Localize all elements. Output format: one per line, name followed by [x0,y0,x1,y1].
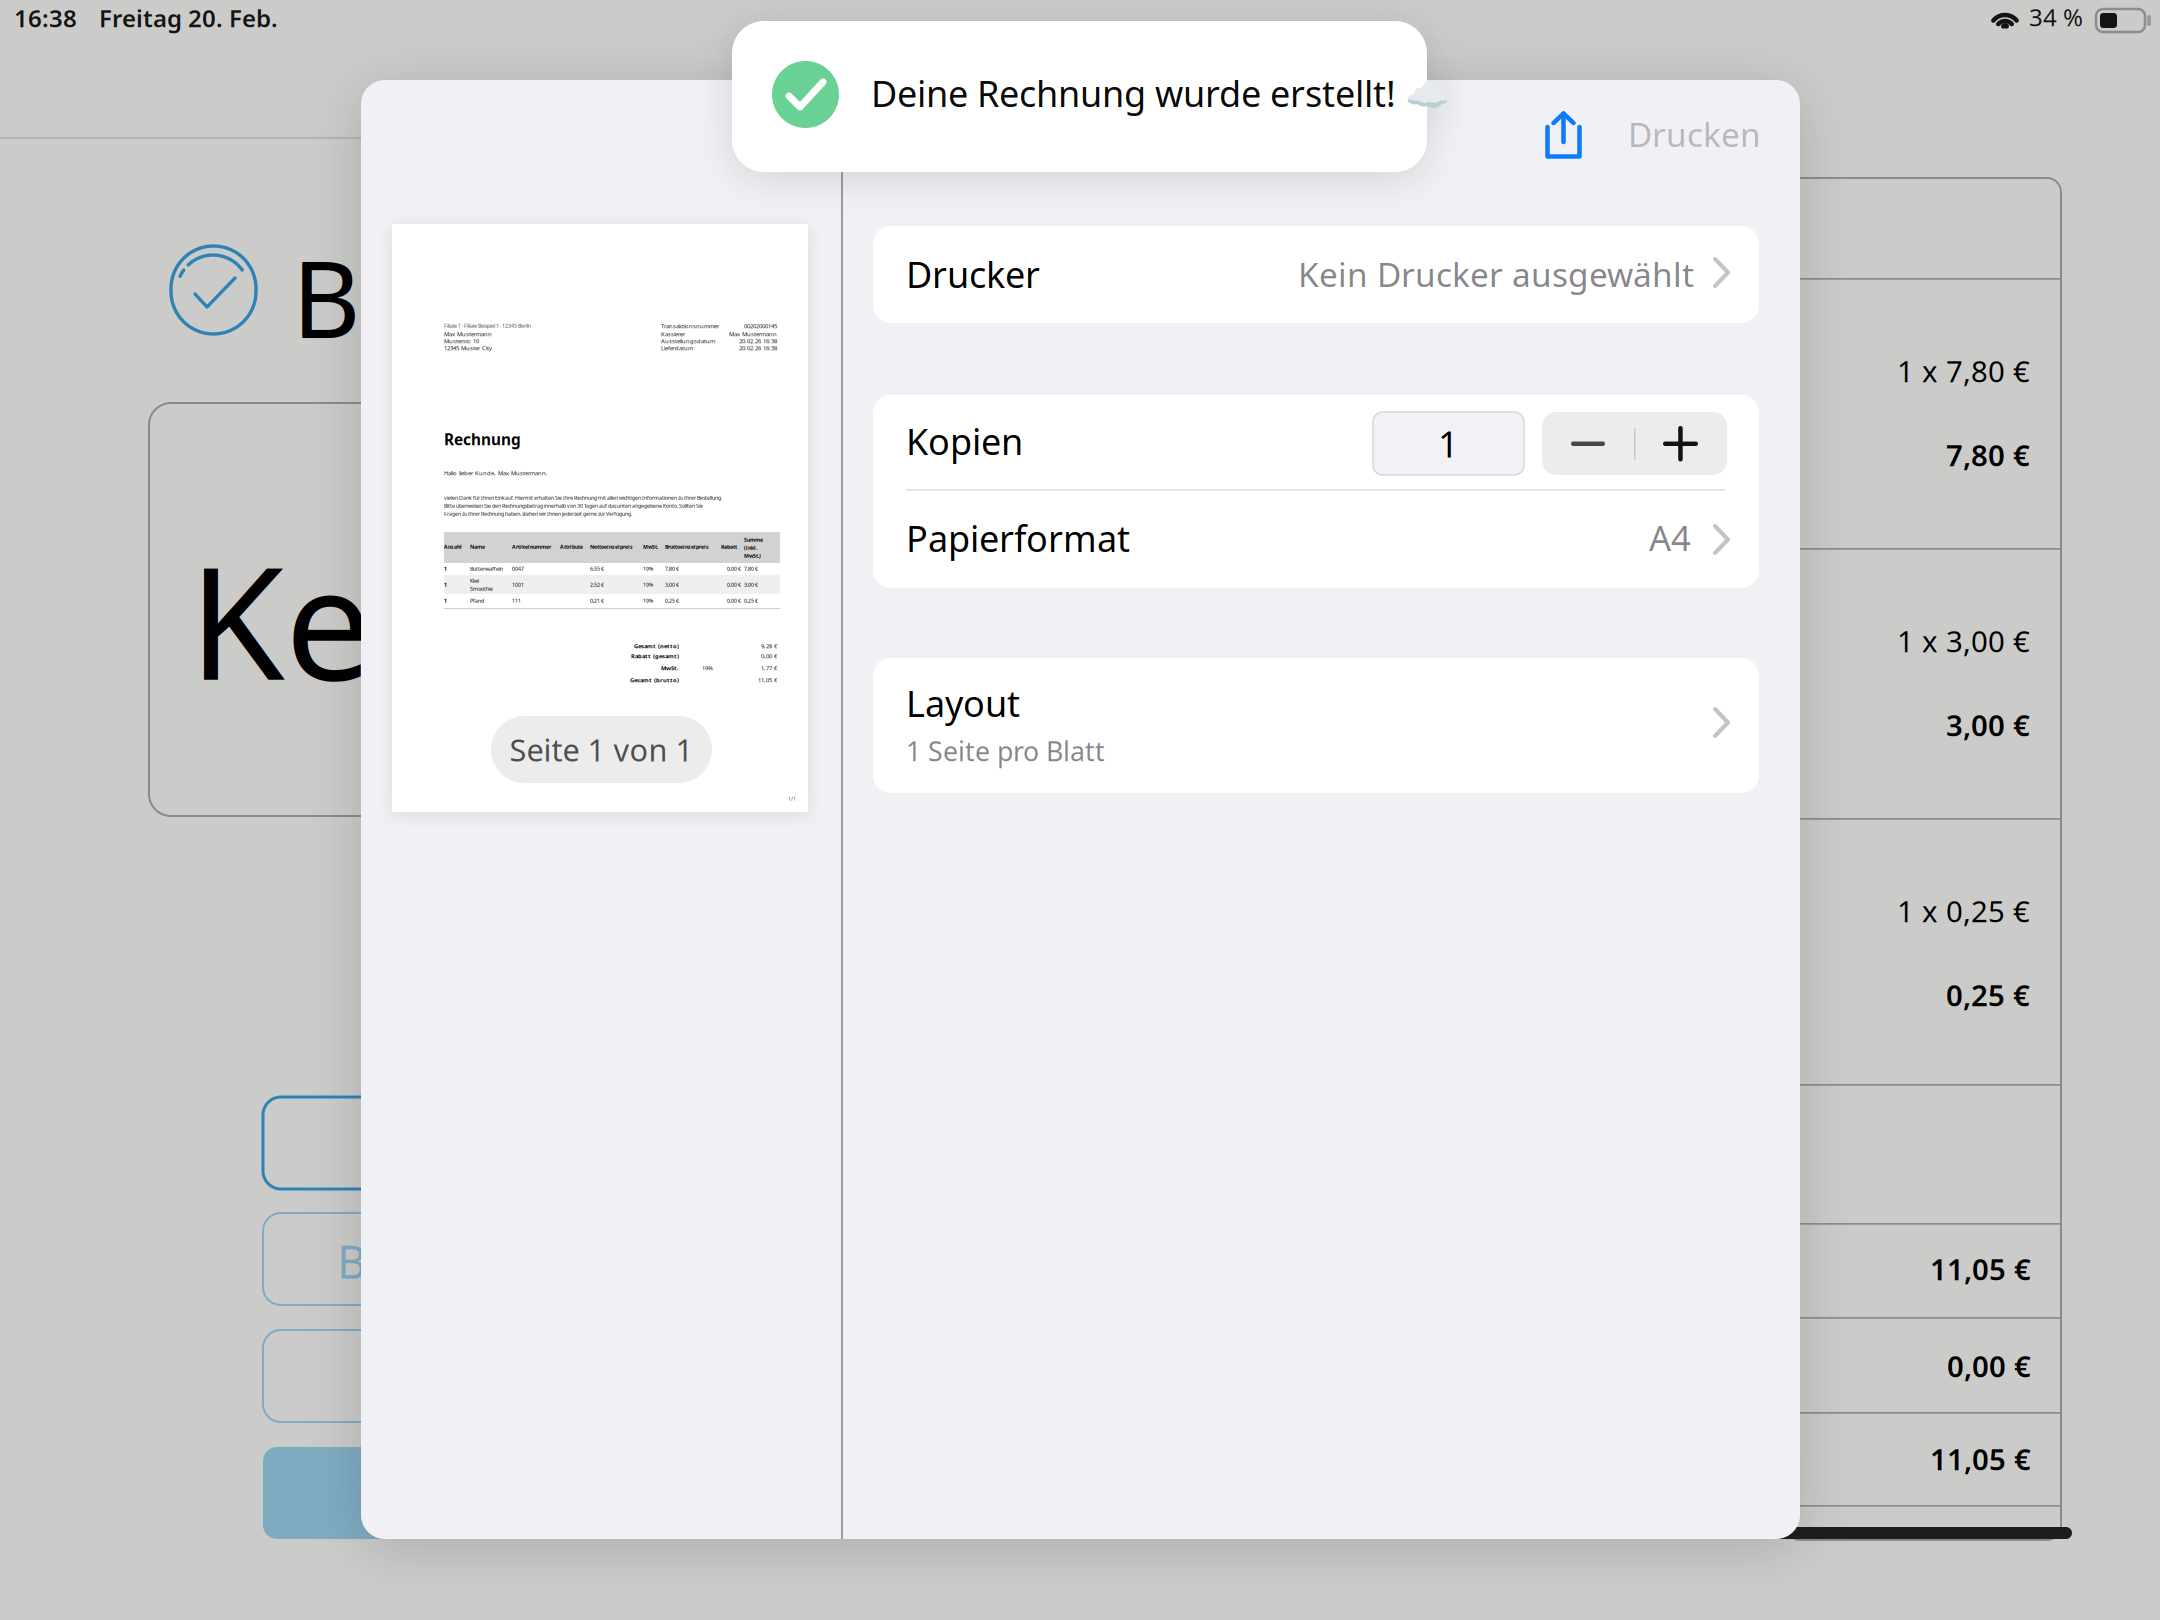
staticText: Deine Rechnung wurde erstellt! ☁️ [871,69,1450,117]
staticText: 6,55 € [590,565,604,572]
staticText: 9,28 € [761,642,777,650]
staticText: 1 [1438,420,1459,467]
staticText: 0,00 € [1947,1346,2031,1385]
staticText: 1/1 [788,795,796,802]
staticText: Butterwaffeln [470,565,503,572]
staticText: 19% [643,565,653,572]
staticText: 11,05 € [1930,1439,2031,1478]
staticText: 16:38 [14,2,77,34]
button[interactable]: Kopien erhöhen [1634,412,1727,475]
staticText: Freitag 20. Feb. [99,2,278,34]
staticText: Fragen zu Ihrer Rechnung haben, stehen w… [444,510,632,517]
staticText: 11,05 € [758,676,777,684]
staticText: Max Mustermann [729,330,777,338]
staticText: Kopien [906,417,1023,465]
staticText: Gesamt (brutto) [630,676,679,684]
staticText: Musterstr. 10 [444,337,479,345]
staticText: 1 x 0,25 € [1897,891,2030,930]
staticText: 0,00 € [727,597,741,604]
staticText: Smoothie [470,585,493,592]
staticText: 111 [512,597,521,604]
staticText: Layout [906,679,1020,727]
staticText: 19% [643,597,653,604]
staticText: 19% [643,581,653,588]
staticText: 1 x 7,80 € [1897,351,2030,390]
staticText: 3,00 € [1946,705,2030,744]
button[interactable]: Bestätigen [263,1447,593,1539]
button[interactable]: Be [263,1213,593,1305]
staticText: Hallo lieber Kunde, Max Mustermann, [444,469,548,477]
staticText: Ausstellungsdatum [661,337,715,345]
button[interactable]: Kopien verringern [1542,412,1634,475]
button[interactable]: Seite 1 von 1 [491,716,712,783]
staticText: 7,80 € [1946,435,2030,474]
staticText: 0,00 € [727,581,741,588]
button[interactable]: Teilen [1535,101,1592,169]
staticText: Ke [189,517,372,722]
staticText: 0,25 € [744,597,758,604]
staticText: Papierformat [906,514,1130,562]
staticText: 00202000145 [744,322,777,330]
staticText: 1 Seite pro Blatt [906,733,1105,769]
staticText: MwSt.) [744,552,761,559]
button[interactable]: Papierformat [873,492,1759,588]
staticText: Attribute [560,543,583,550]
staticText: 2,52 € [590,581,604,588]
staticText: 0,21 € [590,597,604,604]
staticText: 12345 Muster City [444,344,492,352]
staticText: 11,05 € [1930,1249,2031,1288]
staticText: 0,00 € [761,652,777,660]
staticText: vielen Dank für Ihren Einkauf. Hiermit e… [444,494,722,501]
staticText: 19% [702,664,713,672]
staticText: 7,80 € [665,565,679,572]
staticText: Kassierer [661,330,685,338]
staticText: 0,25 € [1946,975,2030,1014]
staticText: Max Mustermann [444,330,492,338]
staticText: MwSt. [643,543,658,550]
staticText: Be [337,1231,392,1291]
staticText: Kein Drucker ausgewählt [1298,252,1694,296]
staticText: Kiwi [470,577,479,584]
staticText: Bitte überweisen Sie den Rechnungsbetrag… [444,502,703,509]
staticText: 20.02.26 16:38 [739,337,777,345]
button[interactable]: Aktion [263,1097,593,1189]
staticText: Transaktionsnummer [661,322,719,330]
staticText: 1001 [512,581,524,588]
staticText: Lieferdatum [661,344,693,352]
staticText: A4 [1649,515,1691,561]
staticText: 3,00 € [744,581,758,588]
staticText: Filiale 1 · Filiale Beispiel 1 · 12345 B… [444,322,531,329]
staticText: 0047 [512,565,524,572]
staticText: 1 [444,597,447,604]
staticText: Drucker [906,250,1040,298]
staticText: 0,00 € [727,565,741,572]
staticText: Be [292,227,419,367]
staticText: 1 [444,565,447,572]
staticText: Artikelnummer [512,543,551,550]
staticText: Name [470,543,485,550]
staticText: Seite 1 von 1 [509,729,693,770]
staticText: Nettoeinzelpreis [590,543,633,550]
staticText: 1,77 € [761,664,777,672]
staticText: 34 % [2029,1,2083,33]
staticText: (inkl. [744,544,757,551]
staticText: Rabatt (gesamt) [631,652,679,660]
staticText: 1 x 3,00 € [1897,621,2030,660]
staticText: 0,25 € [665,597,679,604]
staticText: Rechnung [444,429,521,450]
staticText: MwSt. [661,664,679,672]
button[interactable]: Drucken [1601,101,1769,169]
button[interactable]: Layout [873,658,1759,793]
staticText: Pfand [470,597,484,604]
button[interactable]: Aktion [263,1330,593,1422]
staticText: Bruttoeinzelpreis [665,543,709,550]
staticText: Drucken [1628,112,1761,156]
staticText: Gesamt (netto) [634,642,679,650]
staticText: 7,80 € [744,565,758,572]
staticText: 3,00 € [665,581,679,588]
staticText: Rabatt [721,543,737,550]
staticText: 20.02.26 16:38 [739,344,777,352]
staticText: Summe [744,536,763,543]
button[interactable]: Drucker [873,226,1759,323]
staticText: Anzahl [444,543,462,550]
